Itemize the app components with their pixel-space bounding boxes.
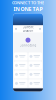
button[interactable]: Server bbox=[14, 52, 27, 60]
button[interactable]: Server bbox=[14, 79, 27, 87]
button[interactable]: Back bbox=[14, 27, 18, 31]
button[interactable]: Server bbox=[28, 79, 42, 87]
button[interactable]: Server bbox=[28, 61, 42, 69]
staticText: Connecting bbox=[19, 44, 36, 47]
button[interactable]: Server bbox=[14, 70, 27, 78]
button[interactable]: Settings bbox=[38, 27, 42, 31]
staticText: Current Location bbox=[22, 25, 33, 32]
button[interactable]: Server bbox=[28, 70, 42, 78]
button[interactable]: Server bbox=[28, 52, 42, 60]
staticText: CONNECT TO THE bbox=[12, 0, 44, 5]
staticText: IN ONE TAP bbox=[13, 5, 42, 12]
button[interactable]: Server bbox=[14, 61, 27, 69]
